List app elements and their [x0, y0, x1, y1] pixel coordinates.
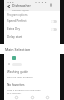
staticText: Delay start: [7, 35, 23, 39]
staticText: Siemens iQ500: [12, 8, 29, 11]
staticText: Dishwasher: [12, 3, 31, 8]
staticText: Program options: [7, 13, 28, 17]
button[interactable]: Settings: [44, 94, 51, 100]
button[interactable]: Back: [6, 4, 11, 9]
button[interactable]: Washing guide: [4, 68, 60, 78]
staticText: as a favorite.: [7, 91, 22, 94]
staticText: Speed Perfect: [7, 19, 27, 23]
button[interactable]: Speed Perfect: [4, 17, 60, 25]
button[interactable]: [4, 61, 60, 67]
button[interactable]: Delay start: [4, 33, 60, 42]
staticText: Extra Dry: [7, 27, 20, 31]
staticText: Main Selection: [5, 47, 31, 52]
staticText: Find the right program: [7, 75, 33, 78]
button[interactable]: Programs: [29, 94, 36, 100]
staticText: Washing guide: [7, 70, 28, 74]
button[interactable]: More options: [49, 3, 53, 7]
staticText: Save a program you use often: [7, 88, 41, 91]
button[interactable]: Extra Dry: [4, 25, 60, 33]
staticText: No favorites: [7, 83, 25, 87]
button[interactable]: Home: [13, 94, 20, 100]
